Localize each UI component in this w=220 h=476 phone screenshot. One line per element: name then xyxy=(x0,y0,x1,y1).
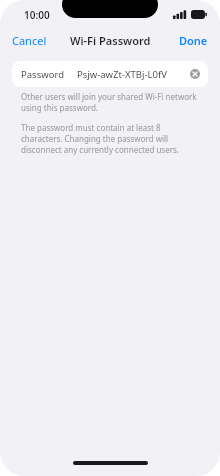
button[interactable]: Clear password xyxy=(188,67,202,81)
staticText: 10:00 xyxy=(24,8,50,22)
staticText: Cancel xyxy=(12,33,47,48)
staticText: The password must contain at least 8 cha… xyxy=(21,122,199,155)
staticText: Done xyxy=(179,33,208,48)
button[interactable]: Cancel xyxy=(0,29,59,52)
staticText: Psjw-awZt-XTBj-L0fV xyxy=(77,68,167,81)
staticText: Other users will join your shared Wi-Fi … xyxy=(21,91,199,113)
button[interactable]: Password xyxy=(12,61,208,87)
button[interactable]: Done xyxy=(167,29,220,52)
staticText: Wi-Fi Password xyxy=(70,33,151,48)
staticText: Password xyxy=(21,68,64,81)
